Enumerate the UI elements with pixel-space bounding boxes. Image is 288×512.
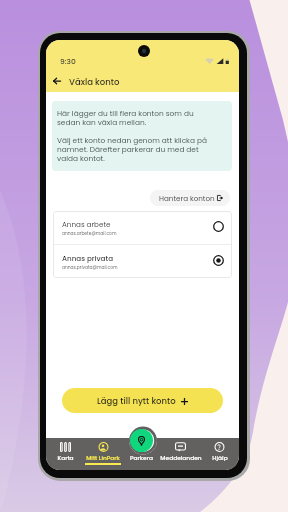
button[interactable]: Back <box>48 72 66 90</box>
staticText: annas.arbete@mail.com <box>62 230 117 236</box>
staticText: Välj ett konto nedan genom att klicka på… <box>57 135 207 163</box>
staticText: Karta <box>57 454 74 462</box>
button[interactable]: Hjälp <box>200 438 239 470</box>
button[interactable]: Hantera konton <box>150 190 230 206</box>
button[interactable]: Mitt LinPark <box>84 438 122 470</box>
staticText: 9:30 <box>60 56 76 66</box>
staticText: Hjälp <box>212 454 228 462</box>
staticText: Lägg till nytt konto <box>97 395 176 407</box>
staticText: Annas arbete <box>62 219 111 229</box>
staticText: Hantera konton <box>159 193 215 203</box>
staticText: annas.privata@mail.com <box>62 264 118 270</box>
staticText: Växla konto <box>69 76 120 88</box>
button[interactable]: Annas arbete <box>53 211 232 244</box>
staticText: Meddelanden <box>160 454 202 462</box>
button[interactable]: Annas privata <box>53 245 232 278</box>
button[interactable]: Karta <box>46 438 84 470</box>
staticText: Parkera <box>130 454 153 462</box>
staticText: Här lägger du till flera konton som du s… <box>57 108 194 127</box>
staticText: Annas privata <box>62 253 114 263</box>
button[interactable]: Parkera <box>122 438 161 470</box>
button[interactable]: Lägg till nytt konto <box>62 388 223 413</box>
staticText: Mitt LinPark <box>86 454 120 462</box>
button[interactable]: Meddelanden <box>161 438 200 470</box>
